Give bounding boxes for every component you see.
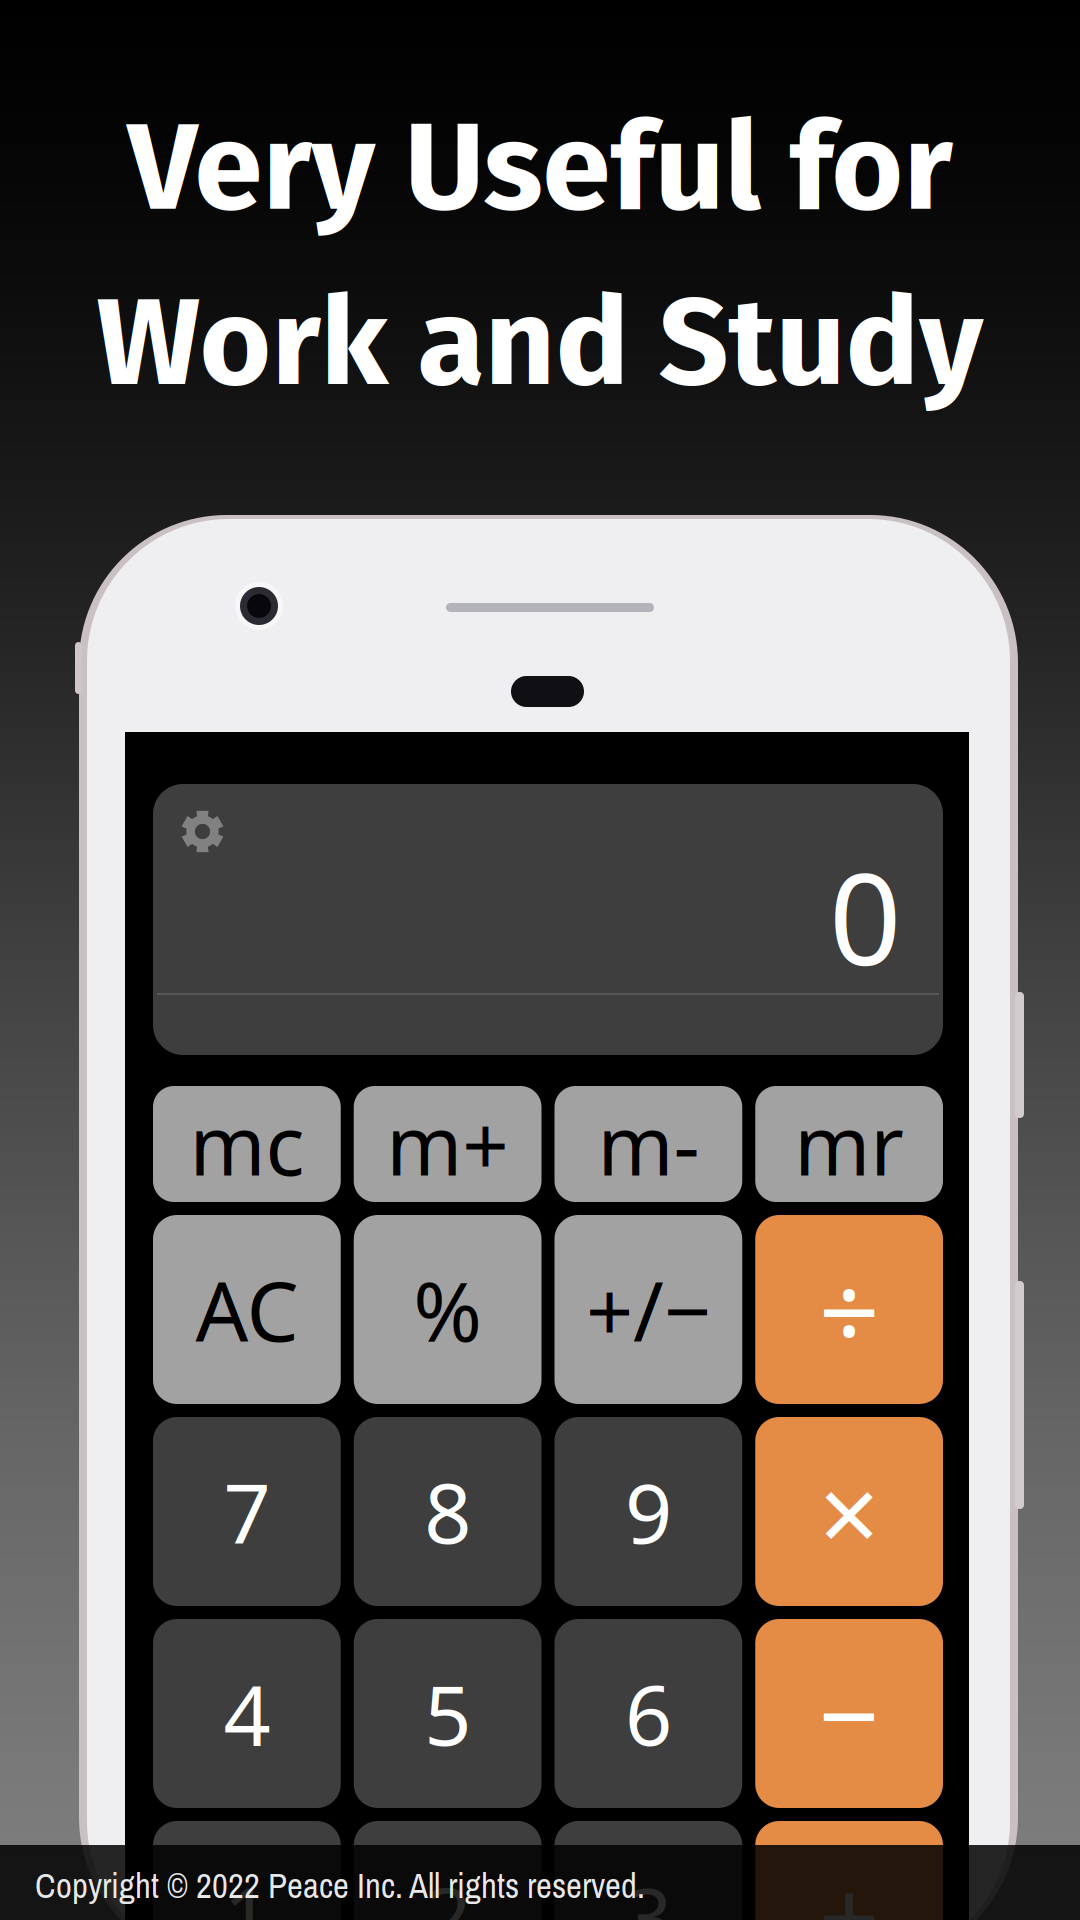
button[interactable]: 1 (153, 1821, 341, 1920)
button[interactable]: m- (554, 1086, 742, 1202)
button[interactable]: AC (153, 1215, 341, 1404)
staticText: 4 (223, 1659, 270, 1768)
staticText: 8 (424, 1457, 471, 1566)
staticText: 1 (223, 1861, 270, 1920)
staticText: m- (597, 1090, 699, 1198)
button[interactable]: +/− (554, 1215, 742, 1404)
button[interactable]: mc (153, 1086, 341, 1202)
button[interactable]: 7 (153, 1417, 341, 1606)
button[interactable]: − (755, 1619, 943, 1808)
button[interactable]: 8 (354, 1417, 542, 1606)
staticText: Work and Study (96, 269, 983, 416)
button[interactable]: ÷ (755, 1215, 943, 1404)
button[interactable]: % (354, 1215, 542, 1404)
staticText: 0 (829, 832, 901, 1000)
staticText: Copyright © 2022 Peace Inc. All rights r… (35, 1862, 645, 1909)
button[interactable]: 2 (354, 1821, 542, 1920)
staticText: +/− (586, 1255, 711, 1364)
button[interactable]: × (755, 1417, 943, 1606)
staticText: − (819, 1643, 880, 1784)
staticText: × (819, 1441, 880, 1582)
staticText: % (413, 1255, 482, 1364)
button[interactable]: 5 (354, 1619, 542, 1808)
staticText: 2 (424, 1861, 471, 1920)
staticText: m+ (386, 1090, 509, 1198)
button[interactable]: Settings (153, 784, 246, 875)
staticText: 9 (625, 1457, 672, 1566)
button[interactable]: 9 (554, 1417, 742, 1606)
button[interactable]: 6 (554, 1619, 742, 1808)
staticText: 6 (625, 1659, 672, 1768)
staticText: mc (189, 1090, 304, 1198)
staticText: 7 (223, 1457, 270, 1566)
staticText: 3 (625, 1861, 672, 1920)
staticText: 5 (424, 1659, 471, 1768)
staticText: Very Useful for (127, 94, 952, 241)
button[interactable]: 4 (153, 1619, 341, 1808)
button[interactable]: mr (755, 1086, 943, 1202)
button[interactable]: m+ (354, 1086, 542, 1202)
staticText: AC (195, 1255, 298, 1364)
staticText: ÷ (819, 1239, 880, 1380)
button[interactable]: + (755, 1821, 943, 1920)
staticText: mr (794, 1090, 904, 1198)
staticText: + (819, 1845, 880, 1920)
button[interactable]: 3 (554, 1821, 742, 1920)
